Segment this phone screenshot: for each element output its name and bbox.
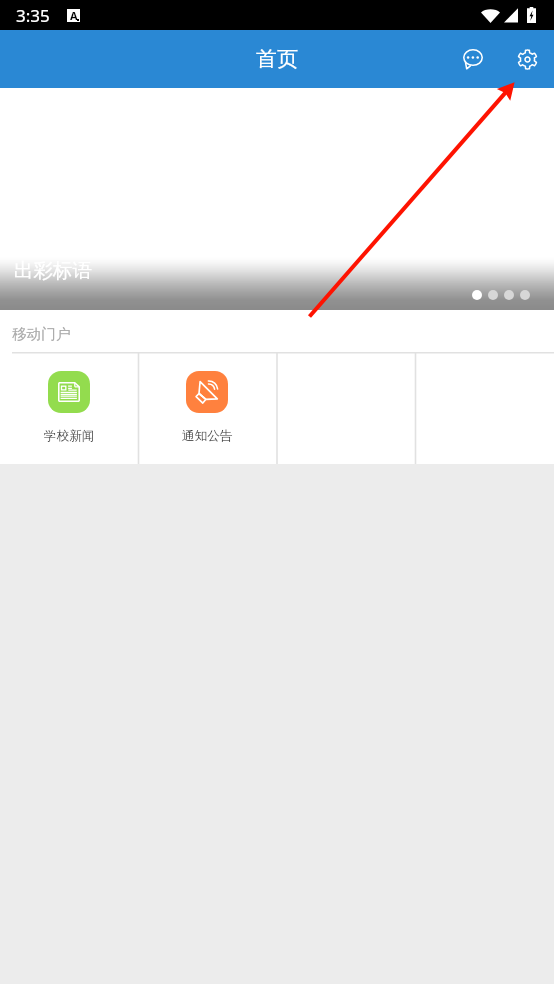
staticText: 学校新闻 <box>44 428 95 444</box>
staticText: 移动门户 <box>12 325 71 343</box>
staticText: A <box>70 8 78 21</box>
staticText: 首页 <box>256 46 298 72</box>
staticText: 通知公告 <box>182 428 233 444</box>
staticText: 3:35 <box>16 4 50 27</box>
button[interactable]: Settings <box>504 36 550 82</box>
button[interactable]: 学校新闻 <box>0 352 138 464</box>
staticText: 出彩标语 <box>14 258 92 283</box>
button[interactable]: 通知公告 <box>138 352 276 464</box>
button[interactable]: Messages <box>450 36 496 82</box>
